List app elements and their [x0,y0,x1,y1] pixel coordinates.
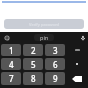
staticText: 6 [53,59,58,70]
button[interactable]: Verify password [4,19,84,29]
button[interactable]: pin [34,34,54,41]
button[interactable]: Keyboard settings [2,33,12,42]
button[interactable] [67,44,87,56]
button[interactable]: 5 [23,58,43,70]
button[interactable] [67,58,87,70]
button[interactable]: 1 [1,44,21,56]
button[interactable]: Voice input [78,33,87,42]
button[interactable]: 8 [23,72,43,85]
button[interactable]: 6 [45,58,65,70]
staticText: 1 [9,45,14,56]
button[interactable]: 4 [1,58,21,70]
button[interactable]: Backspace [67,72,87,85]
button[interactable]: 3 [45,44,65,56]
staticText: pin [40,34,49,41]
staticText: 8 [31,73,36,84]
button[interactable]: 9 [45,72,65,85]
staticText: 2 [31,45,36,56]
staticText: 9 [53,73,58,84]
staticText: 3 [53,45,58,56]
staticText: 5 [31,59,36,70]
staticText: Verify password [29,22,59,27]
staticText: 7 [9,73,14,84]
staticText: 4 [9,59,14,70]
button[interactable]: 2 [23,44,43,56]
button[interactable]: 7 [1,72,21,85]
